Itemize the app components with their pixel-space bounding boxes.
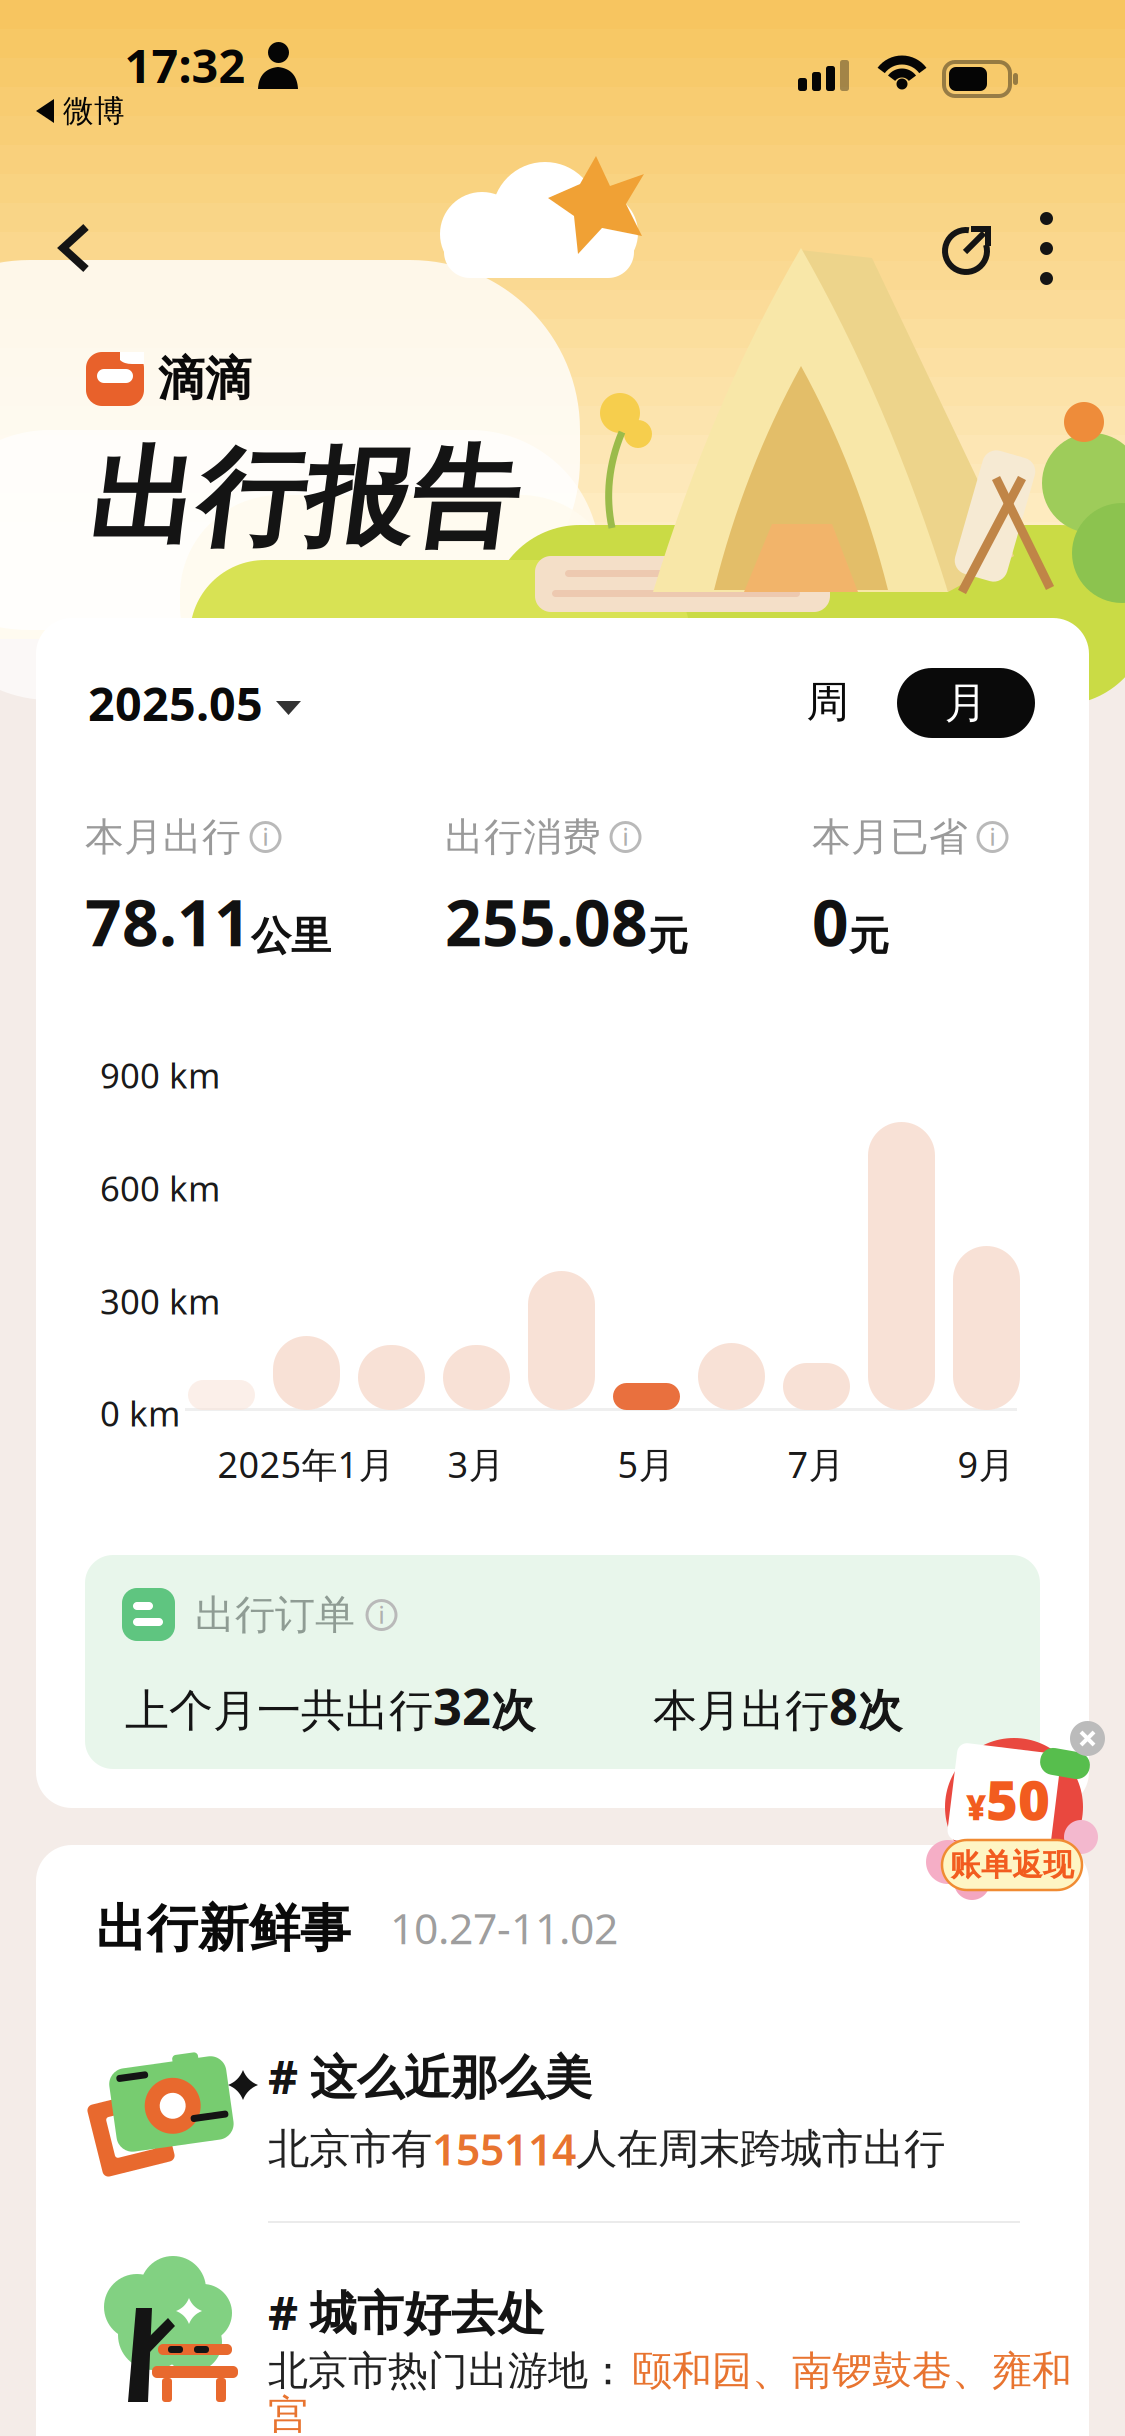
staticText: 宫 — [268, 2390, 308, 2436]
staticText: i — [622, 822, 628, 852]
button[interactable]: 月 — [897, 668, 1035, 738]
staticText: 155114 — [432, 2121, 576, 2177]
staticText: 2025年1月 — [217, 1440, 394, 1488]
button[interactable]: ¥50 — [926, 1732, 1102, 1900]
staticText: 78.11公里 — [85, 879, 331, 964]
staticText: 出行报告 — [84, 433, 512, 564]
staticText: # 城市好去处 — [268, 2281, 545, 2343]
staticText: 月 — [944, 677, 987, 729]
staticText: 255.08元 — [445, 879, 688, 964]
staticText: 5月 — [617, 1440, 674, 1488]
button[interactable]: Share — [942, 222, 994, 274]
staticText: 北京市热门出游地： — [268, 2346, 628, 2395]
staticText: 出行订单 — [195, 1590, 355, 1639]
staticText: i — [262, 822, 268, 852]
button[interactable]: More — [1040, 212, 1053, 285]
staticText: i — [989, 822, 995, 852]
staticText: i — [378, 1600, 384, 1630]
staticText: 出行消费 — [445, 813, 601, 861]
staticText: 微博 — [63, 92, 125, 130]
button[interactable]: 周 — [806, 676, 849, 728]
staticText: 滴滴 — [158, 350, 252, 408]
button[interactable]: 微博 — [36, 92, 125, 130]
staticText: 10.27-11.02 — [390, 1899, 618, 1956]
staticText: 周 — [806, 676, 849, 728]
staticText: 9月 — [957, 1440, 1014, 1488]
staticText: 颐和园、南锣鼓巷、雍和 — [632, 2346, 1072, 2395]
staticText: 0 km — [100, 1390, 180, 1436]
staticText: # 这么近那么美 — [268, 2045, 592, 2107]
staticText: 7月 — [787, 1440, 844, 1488]
staticText: 600 km — [100, 1165, 220, 1211]
button[interactable]: 2025.05 — [88, 672, 301, 734]
staticText: 账单返现 — [950, 1846, 1074, 1884]
staticText: 3月 — [447, 1440, 504, 1488]
staticText: 出行新鲜事 — [96, 1898, 351, 1960]
button[interactable]: # 这么近那么美 — [96, 2047, 1026, 2187]
staticText: 人在周末跨城市出行 — [576, 2124, 945, 2174]
button[interactable]: Back — [60, 224, 90, 272]
staticText: 2025.05 — [88, 672, 263, 734]
staticText: 本月已省 — [812, 813, 968, 861]
staticText: 上个月一共出行32次 — [125, 1672, 535, 1739]
staticText: 北京市有 — [268, 2124, 432, 2174]
staticText: 300 km — [100, 1278, 220, 1324]
staticText: 本月出行 — [85, 813, 241, 861]
staticText: 0元 — [812, 879, 889, 964]
button[interactable]: Close — [1070, 1721, 1105, 1756]
staticText: ¥50 — [966, 1763, 1050, 1835]
staticText: 本月出行8次 — [653, 1672, 902, 1739]
staticText: 900 km — [100, 1052, 220, 1098]
staticText: 17:32 — [124, 34, 245, 96]
button[interactable]: # 城市好去处 — [96, 2283, 1026, 2436]
